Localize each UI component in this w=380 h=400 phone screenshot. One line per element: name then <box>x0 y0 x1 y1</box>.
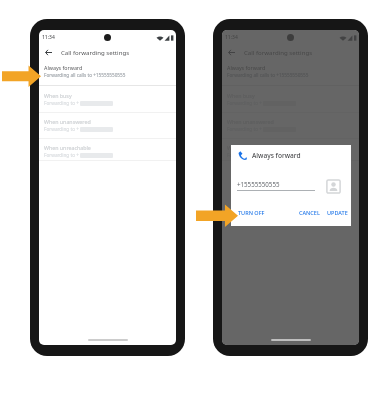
staticText: When unreachable <box>44 144 91 151</box>
staticText: Forwarding to + <box>44 152 79 158</box>
staticText: Call forwarding settings <box>244 48 313 56</box>
button[interactable]: When unreachable <box>222 139 359 160</box>
button[interactable]: When unanswered <box>39 113 176 138</box>
button[interactable]: TURN OFF <box>237 207 266 218</box>
staticText: 11:34 <box>225 34 238 41</box>
button[interactable]: When busy <box>39 86 176 112</box>
staticText: TURN OFF <box>238 209 265 216</box>
staticText: Always forward <box>252 151 301 160</box>
button[interactable]: When unreachable <box>39 139 176 160</box>
staticText: Always forward <box>44 64 83 71</box>
staticText: +15555550555 <box>237 180 280 188</box>
button[interactable]: Back <box>225 46 238 59</box>
staticText: 11:34 <box>42 34 55 41</box>
button[interactable]: CANCEL <box>298 207 321 218</box>
button[interactable]: Always forward <box>39 59 176 85</box>
staticText: CANCEL <box>299 209 320 216</box>
staticText: Forwarding to + <box>227 152 262 158</box>
staticText: Forwarding all calls to +15555550555 <box>227 72 309 78</box>
button[interactable]: Pick contact <box>326 179 341 194</box>
button[interactable]: Back <box>42 46 55 59</box>
staticText: Forwarding to + <box>44 126 79 132</box>
button[interactable]: Always forward <box>222 59 359 85</box>
staticText: Forwarding to + <box>44 100 79 106</box>
staticText: Call forwarding settings <box>61 48 130 56</box>
staticText: Always forward <box>227 64 266 71</box>
staticText: UPDATE <box>327 209 348 216</box>
staticText: When unanswered <box>44 118 91 125</box>
staticText: Forwarding all calls to +15555550555 <box>44 72 126 78</box>
staticText: When unreachable <box>227 144 274 151</box>
button[interactable]: UPDATE <box>326 207 349 218</box>
staticText: When busy <box>44 92 72 99</box>
